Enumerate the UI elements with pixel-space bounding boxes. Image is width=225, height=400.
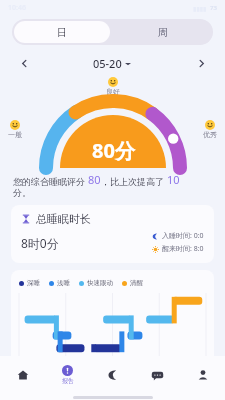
staticText: 80 [88, 172, 101, 187]
staticText: ▮▮▮▮ [193, 5, 207, 12]
staticText: 总睡眠时长 [36, 212, 91, 226]
button[interactable]: 总睡眠时长 [11, 205, 214, 263]
staticText: 入睡时间: 0:0 [162, 231, 204, 241]
staticText: 醒来时间: 8:0 [162, 244, 204, 254]
button[interactable]: 日 [14, 21, 110, 43]
button[interactable]: 周 [112, 19, 213, 45]
staticText: 良好 [106, 87, 120, 96]
button[interactable]: 05-20 [93, 56, 131, 71]
staticText: 10:46 [8, 3, 26, 13]
button[interactable]: Messages [135, 356, 180, 394]
button[interactable]: 报告 [45, 356, 90, 394]
button[interactable]: Sleep [90, 356, 135, 394]
staticText: 清醒 [130, 279, 143, 287]
staticText: 优秀 [203, 130, 217, 139]
staticText: 73 [210, 4, 217, 12]
staticText: 您的综合睡眠评分 [13, 175, 88, 187]
staticText: 快速眼动 [87, 279, 113, 287]
button[interactable]: 深睡 [11, 270, 214, 365]
staticText: 周 [158, 26, 168, 39]
button[interactable]: Next day [193, 55, 209, 71]
staticText: 80分 [92, 137, 135, 164]
staticText: ，比上次提高了 [101, 175, 167, 187]
staticText: 一般 [8, 130, 22, 139]
button[interactable]: Home [0, 356, 45, 394]
button[interactable]: Profile [180, 356, 225, 394]
staticText: 分。 [13, 187, 31, 198]
staticText: 浅睡 [57, 279, 70, 287]
button[interactable]: Previous day [16, 55, 32, 71]
staticText: 10 [167, 172, 180, 187]
staticText: 日 [57, 26, 67, 39]
staticText: 05-20 [93, 56, 122, 71]
staticText: 8时0分 [21, 235, 59, 251]
staticText: 报告 [62, 377, 74, 385]
staticText: 深睡 [27, 279, 40, 287]
